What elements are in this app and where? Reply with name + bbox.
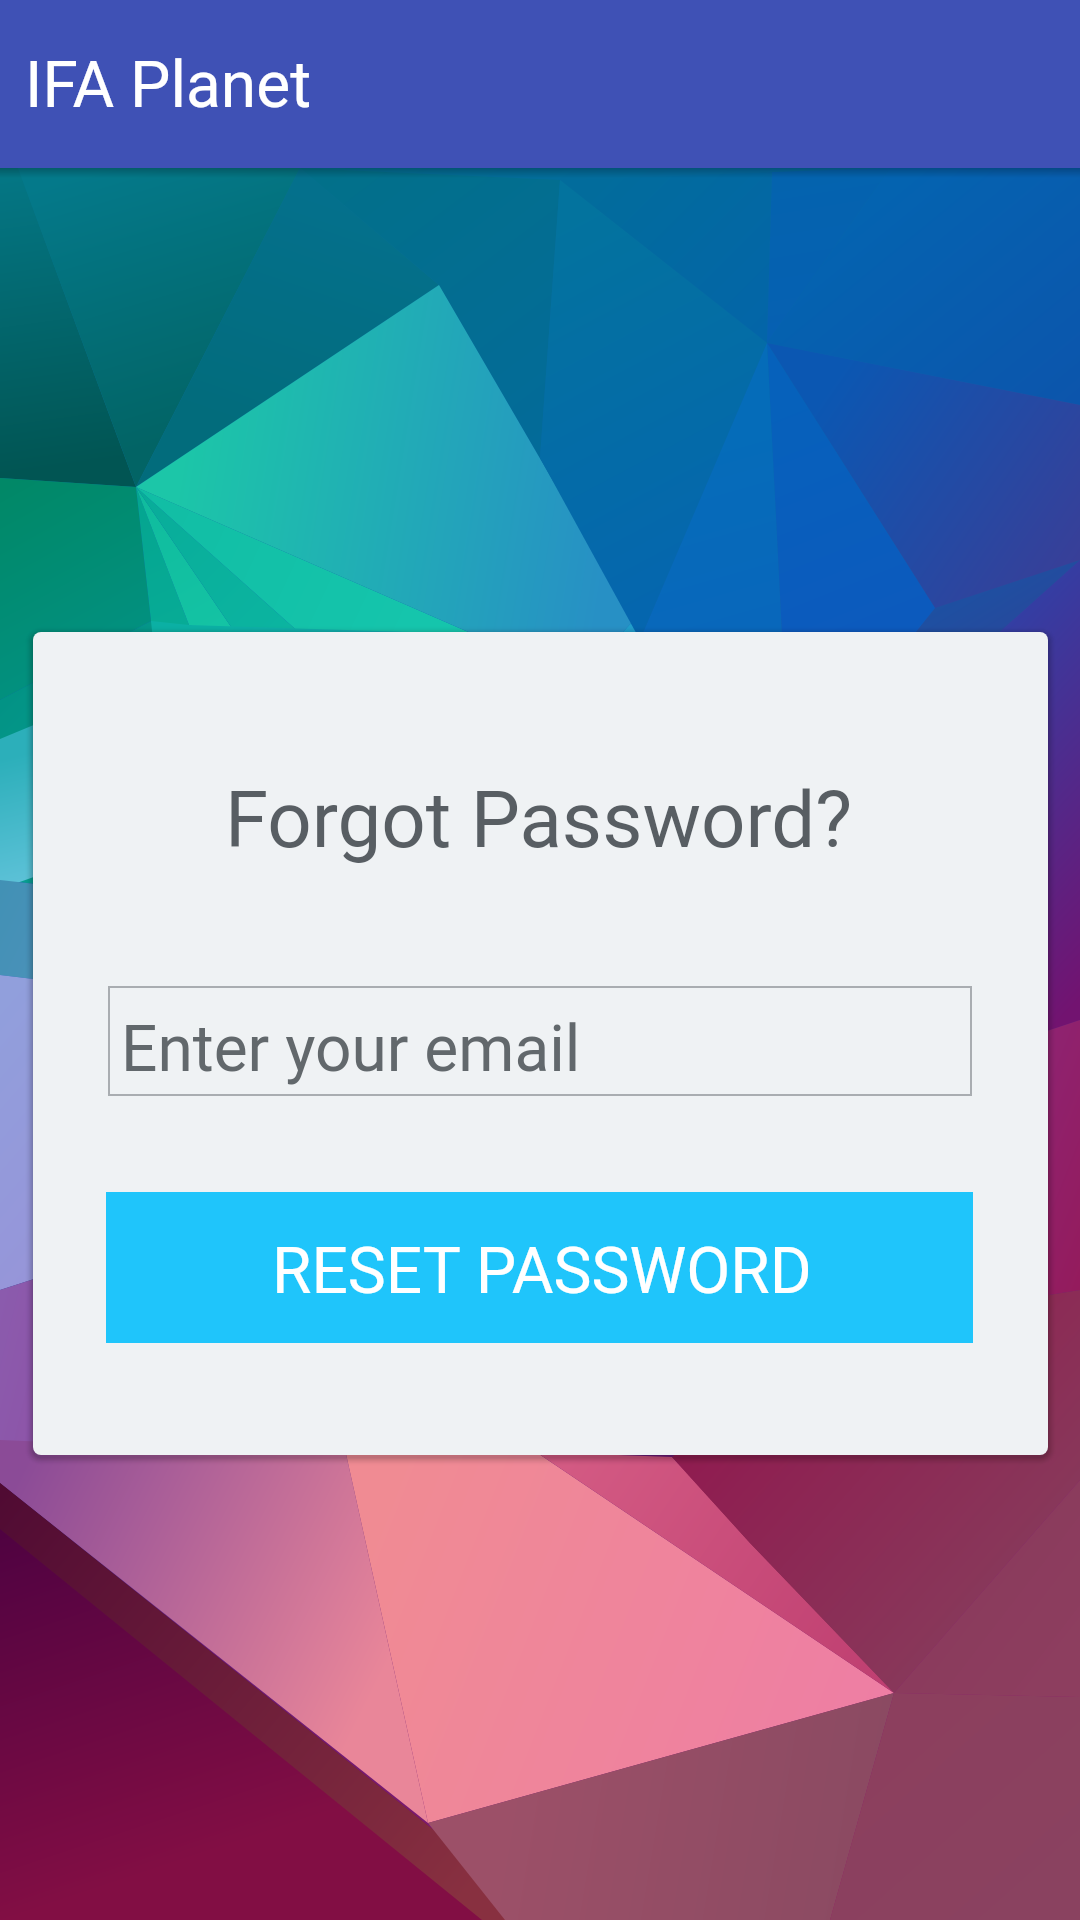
button[interactable]: Enter your email: [108, 986, 972, 1096]
staticText: Forgot Password?: [225, 775, 853, 866]
staticText: Enter your email: [121, 1012, 581, 1087]
button[interactable]: RESET PASSWORD: [106, 1192, 973, 1343]
staticText: RESET PASSWORD: [272, 1234, 812, 1309]
staticText: IFA Planet: [25, 48, 312, 123]
